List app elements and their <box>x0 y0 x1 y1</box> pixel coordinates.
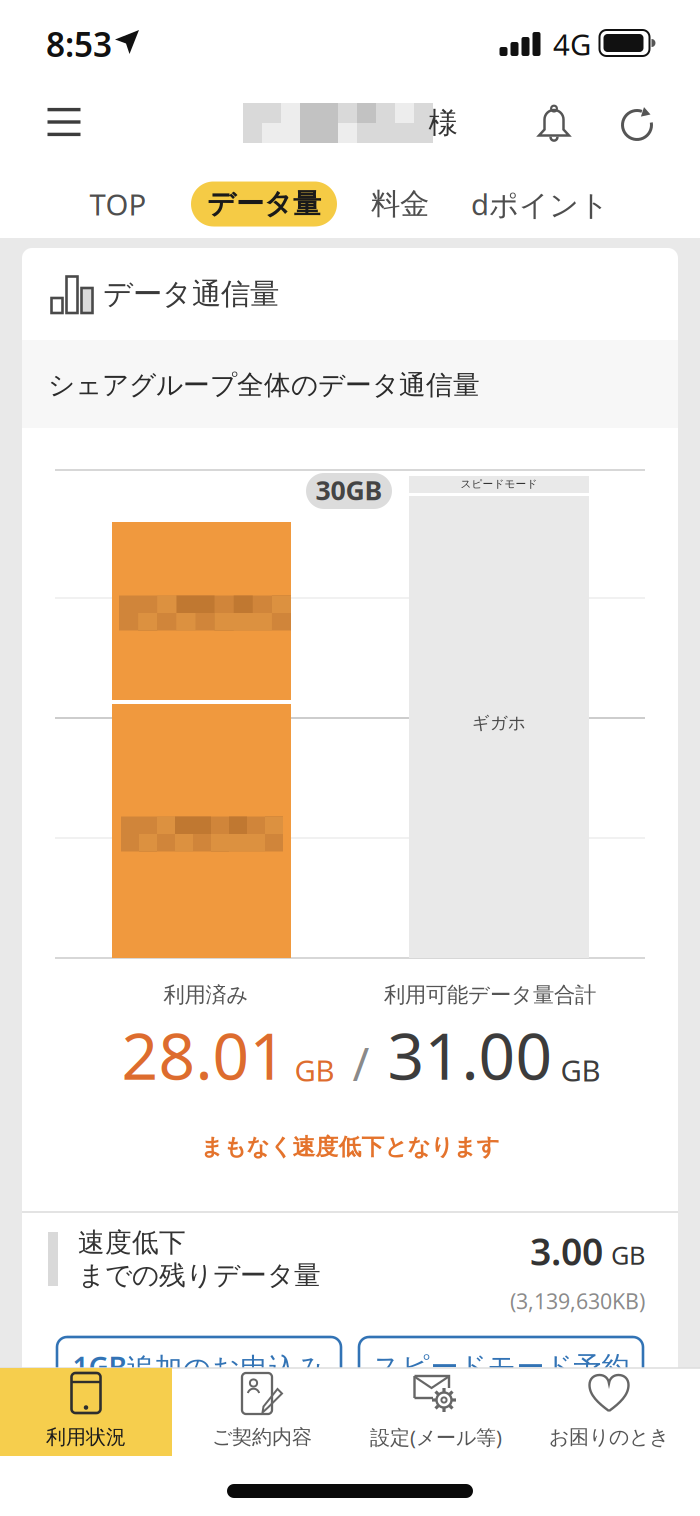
button[interactable]: お困りのとき <box>523 1368 699 1456</box>
staticText: データ量 <box>207 187 321 221</box>
staticText: 様 <box>428 105 457 141</box>
staticText: 1GB追加のお申込み <box>72 1348 325 1386</box>
staticText: 利用可能データ量合計 <box>384 982 596 1008</box>
staticText: 31.00 <box>387 1012 552 1097</box>
staticText: データ通信量 <box>103 276 279 312</box>
staticText: (3,139,630KB) <box>510 1287 645 1315</box>
staticText: 利用状況 <box>46 1425 126 1449</box>
staticText: ご契約内容 <box>212 1425 312 1449</box>
staticText: 利用済み <box>163 982 248 1008</box>
staticText: 速度低下 <box>78 1226 186 1259</box>
staticText: までの残りデータ量 <box>78 1259 321 1292</box>
staticText: / <box>352 1033 369 1093</box>
button[interactable]: Notifications <box>532 102 576 146</box>
staticText: 8:53 <box>46 22 112 66</box>
staticText: 28.01 <box>121 1012 286 1097</box>
button[interactable]: 設定(メール等) <box>349 1368 525 1456</box>
button[interactable]: Menu <box>42 102 86 142</box>
staticText: dポイント <box>471 184 609 223</box>
staticText: スピードモード予約 <box>372 1350 629 1384</box>
staticText: 30GB <box>315 472 382 508</box>
staticText: GB <box>611 1238 645 1272</box>
staticText: 4G <box>553 24 591 63</box>
staticText: まもなく速度低下となります <box>200 1133 499 1161</box>
staticText: TOP <box>89 184 146 223</box>
staticText: GB <box>560 1050 600 1089</box>
staticText: 設定(メール等) <box>370 1424 502 1450</box>
staticText: スピードモード <box>460 477 537 490</box>
button[interactable]: データ量 <box>191 181 337 226</box>
staticText: シェアグループ全体のデータ通信量 <box>48 369 480 401</box>
button[interactable]: ご契約内容 <box>174 1368 350 1456</box>
staticText: GB <box>294 1050 334 1089</box>
button[interactable]: スピードモード予約 <box>359 1337 643 1417</box>
staticText: 3.00 <box>530 1226 603 1276</box>
staticText: お困りのとき <box>549 1425 669 1449</box>
button[interactable]: TOP <box>68 182 168 226</box>
button[interactable]: 料金 <box>355 182 445 226</box>
button[interactable]: 1GB追加のお申込み <box>57 1337 341 1417</box>
staticText: ギガホ <box>472 712 526 734</box>
button[interactable]: dポイント <box>470 182 610 226</box>
button[interactable]: Reload <box>615 102 659 146</box>
staticText: 料金 <box>371 186 429 222</box>
button[interactable]: 利用状況 <box>0 1368 172 1456</box>
